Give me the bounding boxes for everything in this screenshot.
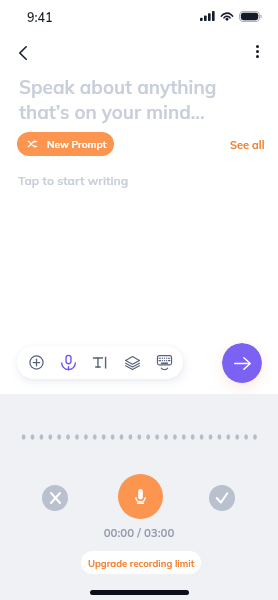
button[interactable]: Cancel [42, 485, 68, 511]
button[interactable]: Keyboard [151, 346, 177, 379]
staticText: 9:41 [27, 9, 53, 25]
button[interactable]: Continue [222, 343, 262, 383]
button[interactable]: Back [8, 38, 38, 68]
staticText: New Prompt [47, 138, 107, 151]
button[interactable]: See all [226, 134, 269, 156]
button[interactable]: Add attachment [23, 346, 49, 379]
button[interactable]: Upgrade recording limit [81, 551, 201, 574]
button[interactable]: Record [118, 474, 163, 519]
button[interactable]: Layers [119, 346, 145, 379]
button[interactable]: More options [244, 38, 270, 64]
button[interactable]: Done [209, 485, 235, 511]
staticText: Upgrade recording limit [88, 557, 195, 569]
button[interactable]: Record audio [55, 346, 81, 379]
staticText: 00:00 / 03:00 [0, 525, 278, 539]
staticText: Tap to start writing [18, 173, 129, 188]
button[interactable]: New Prompt [17, 132, 114, 156]
staticText: See all [230, 138, 265, 152]
button[interactable]: Text style [87, 346, 113, 379]
staticText: Speak about anything that’s on your mind… [19, 75, 217, 124]
